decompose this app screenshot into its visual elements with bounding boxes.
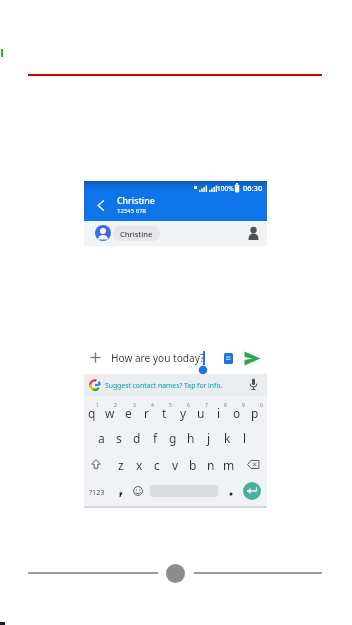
staticText: r [144, 405, 149, 421]
staticText: w [105, 405, 115, 421]
staticText: 5 [169, 402, 172, 409]
button[interactable] [90, 193, 112, 217]
staticText: d [133, 430, 141, 446]
staticText: ?123 [89, 487, 105, 497]
button[interactable] [249, 378, 258, 391]
staticText: k [224, 430, 231, 446]
staticText: j [207, 430, 211, 446]
staticText: p [251, 405, 259, 421]
button[interactable] [133, 486, 143, 496]
staticText: 12345 678 [117, 207, 147, 215]
staticText: c [154, 457, 160, 473]
staticText: 9 [242, 402, 245, 409]
staticText: Christine [120, 229, 153, 239]
staticText: 06:30 [243, 183, 263, 193]
staticText: s [116, 430, 122, 446]
staticText: t [162, 405, 167, 421]
staticText: 2 [114, 402, 117, 409]
button[interactable] [91, 459, 101, 469]
button[interactable] [248, 226, 259, 240]
staticText: 0 [260, 402, 263, 409]
staticText: u [197, 405, 205, 421]
button[interactable] [229, 492, 233, 496]
staticText: l [243, 430, 247, 446]
staticText: a [98, 430, 105, 446]
button[interactable] [90, 352, 101, 363]
button[interactable]: Christine [113, 226, 160, 241]
button[interactable] [247, 460, 260, 469]
staticText: i [217, 405, 221, 421]
staticText: h [187, 430, 195, 446]
button[interactable] [224, 353, 233, 364]
staticText: o [233, 405, 241, 421]
staticText: 1 [96, 402, 99, 409]
staticText: Christine [117, 195, 155, 207]
staticText: 3 [133, 402, 136, 409]
button[interactable] [119, 492, 123, 498]
staticText: b [189, 457, 197, 473]
staticText: Suggest contact names? Tap for info. [105, 381, 223, 390]
staticText: e [125, 405, 132, 421]
staticText: 8 [224, 402, 227, 409]
staticText: x [136, 457, 143, 473]
staticText: v [172, 457, 179, 473]
staticText: m [223, 457, 235, 473]
staticText: 6 [187, 402, 190, 409]
staticText: n [207, 457, 215, 473]
staticText: q [88, 405, 96, 421]
button[interactable] [244, 351, 261, 366]
staticText: z [118, 457, 124, 473]
staticText: 4 [151, 402, 154, 409]
staticText: y [180, 405, 187, 421]
button[interactable] [243, 482, 261, 500]
staticText: 7 [205, 402, 208, 409]
staticText: 100% [217, 184, 234, 193]
staticText: f [153, 430, 158, 446]
staticText: g [169, 430, 177, 446]
button[interactable] [166, 564, 185, 583]
staticText: How are you today? [111, 351, 205, 365]
